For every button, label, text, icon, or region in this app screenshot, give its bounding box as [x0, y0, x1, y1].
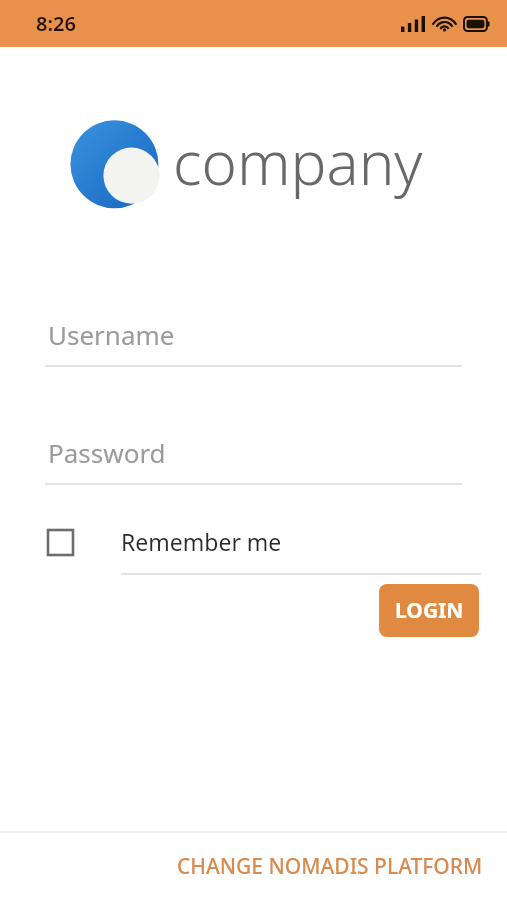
staticText: Username	[48, 317, 175, 351]
button[interactable]: CHANGE NOMADIS PLATFORM	[0, 833, 507, 900]
staticText: Remember me	[121, 526, 282, 557]
staticText: company	[173, 121, 423, 203]
button[interactable]: LOGIN	[379, 584, 479, 637]
button[interactable]: Username	[45, 317, 462, 367]
staticText: LOGIN	[395, 596, 464, 625]
button[interactable]: Password	[45, 435, 462, 485]
staticText: CHANGE NOMADIS PLATFORM	[177, 852, 483, 881]
staticText: Password	[48, 435, 166, 469]
button[interactable]: Remember me	[45, 526, 462, 557]
staticText: 8:26	[36, 10, 76, 37]
